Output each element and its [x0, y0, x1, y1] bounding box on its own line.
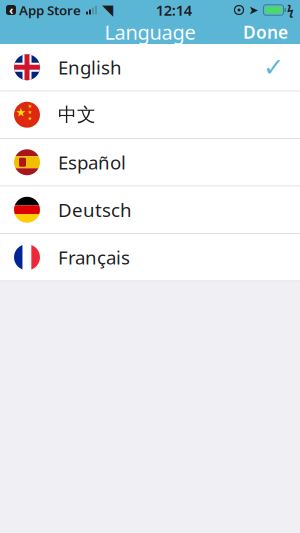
- button[interactable]: ★: [0, 91, 300, 139]
- staticText: ϟ: [287, 2, 294, 18]
- button[interactable]: Français: [0, 234, 300, 281]
- button[interactable]: English: [0, 44, 300, 91]
- staticText: Français: [58, 245, 130, 270]
- staticText: 12:14: [156, 0, 192, 20]
- staticText: ★: [15, 105, 26, 119]
- staticText: Español: [58, 150, 126, 175]
- staticText: Language: [104, 19, 195, 45]
- staticText: Done: [243, 20, 288, 43]
- staticText: ➤: [248, 3, 258, 17]
- staticText: ★: [27, 103, 32, 109]
- staticText: 中文: [58, 103, 96, 126]
- staticText: ★: [27, 109, 32, 115]
- button[interactable]: Español: [0, 139, 300, 186]
- button[interactable]: Deutsch: [0, 186, 300, 234]
- staticText: English: [58, 55, 122, 80]
- staticText: ‹: [9, 2, 13, 18]
- staticText: ◥: [102, 2, 113, 18]
- staticText: Deutsch: [58, 197, 132, 222]
- staticText: ✓: [263, 53, 284, 82]
- staticText: ★: [27, 115, 32, 121]
- staticText: App Store: [16, 1, 81, 19]
- button[interactable]: Done: [231, 16, 300, 47]
